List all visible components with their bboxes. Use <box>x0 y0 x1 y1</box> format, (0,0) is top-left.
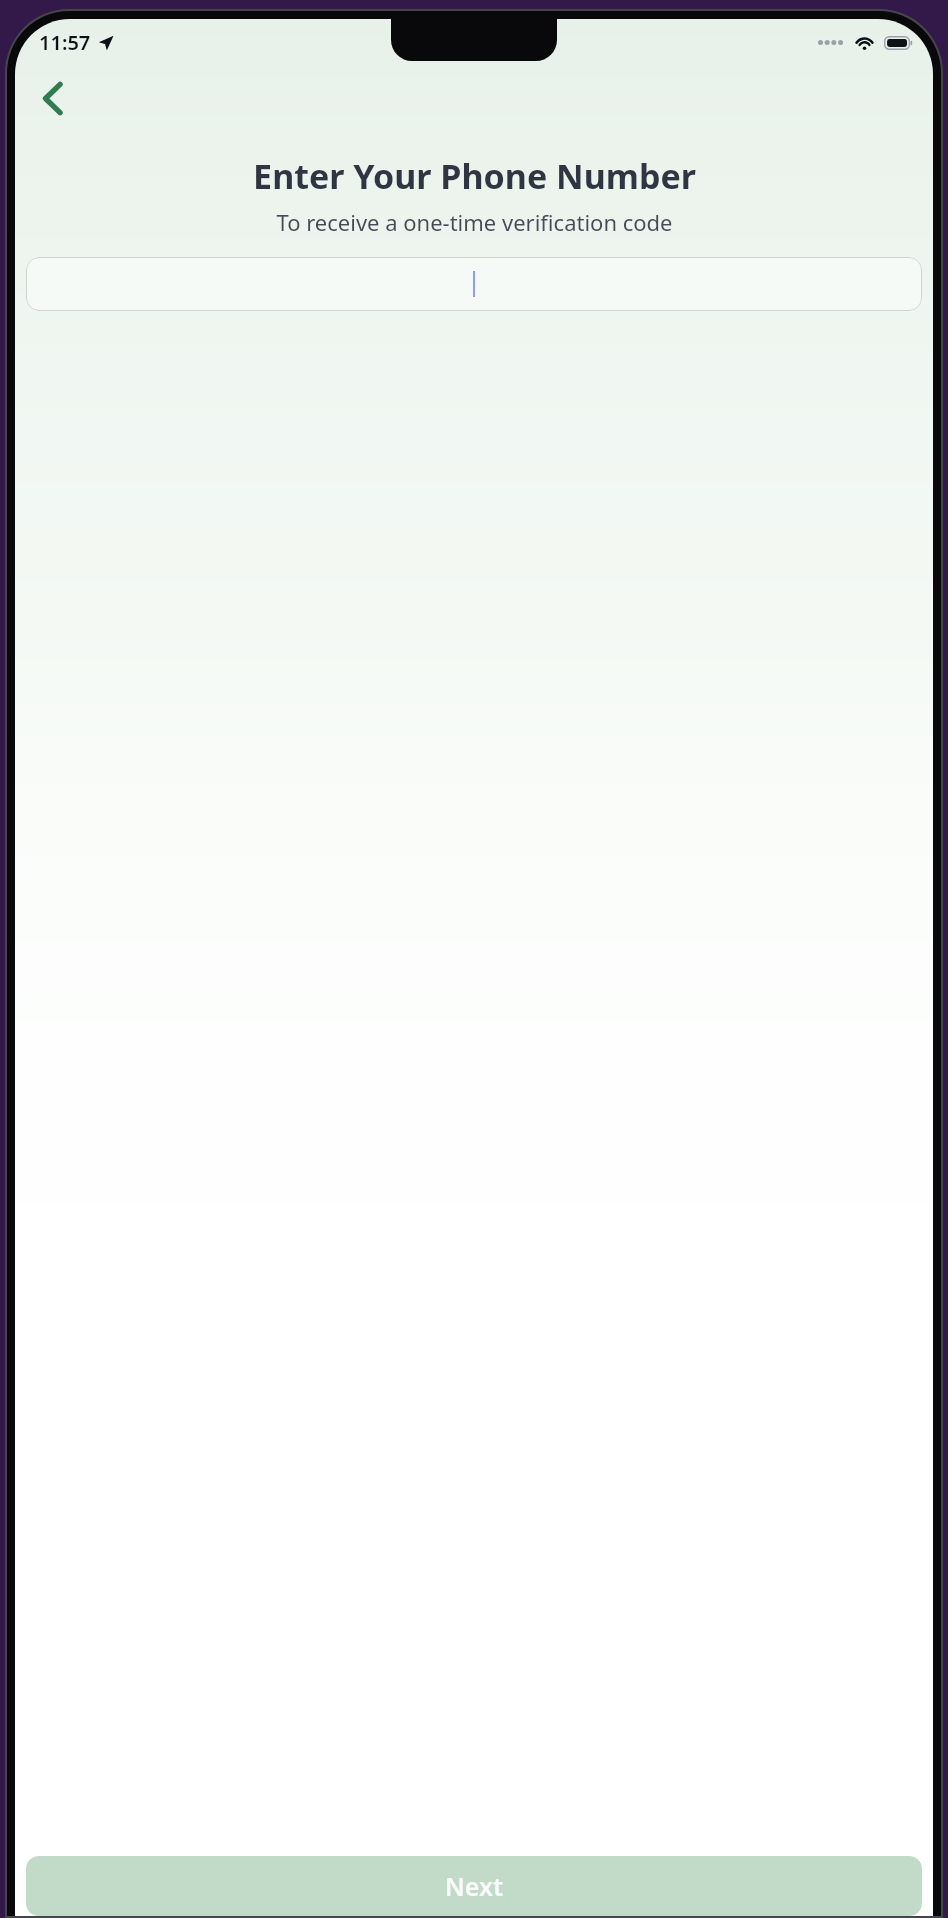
staticText: Next <box>445 1869 504 1903</box>
button[interactable] <box>26 257 922 311</box>
button[interactable]: Back <box>23 69 81 127</box>
button[interactable]: Next <box>26 1856 922 1916</box>
staticText: 11:57 <box>39 29 91 56</box>
staticText: To receive a one-time verification code <box>276 207 673 237</box>
staticText: Enter Your Phone Number <box>253 153 696 199</box>
